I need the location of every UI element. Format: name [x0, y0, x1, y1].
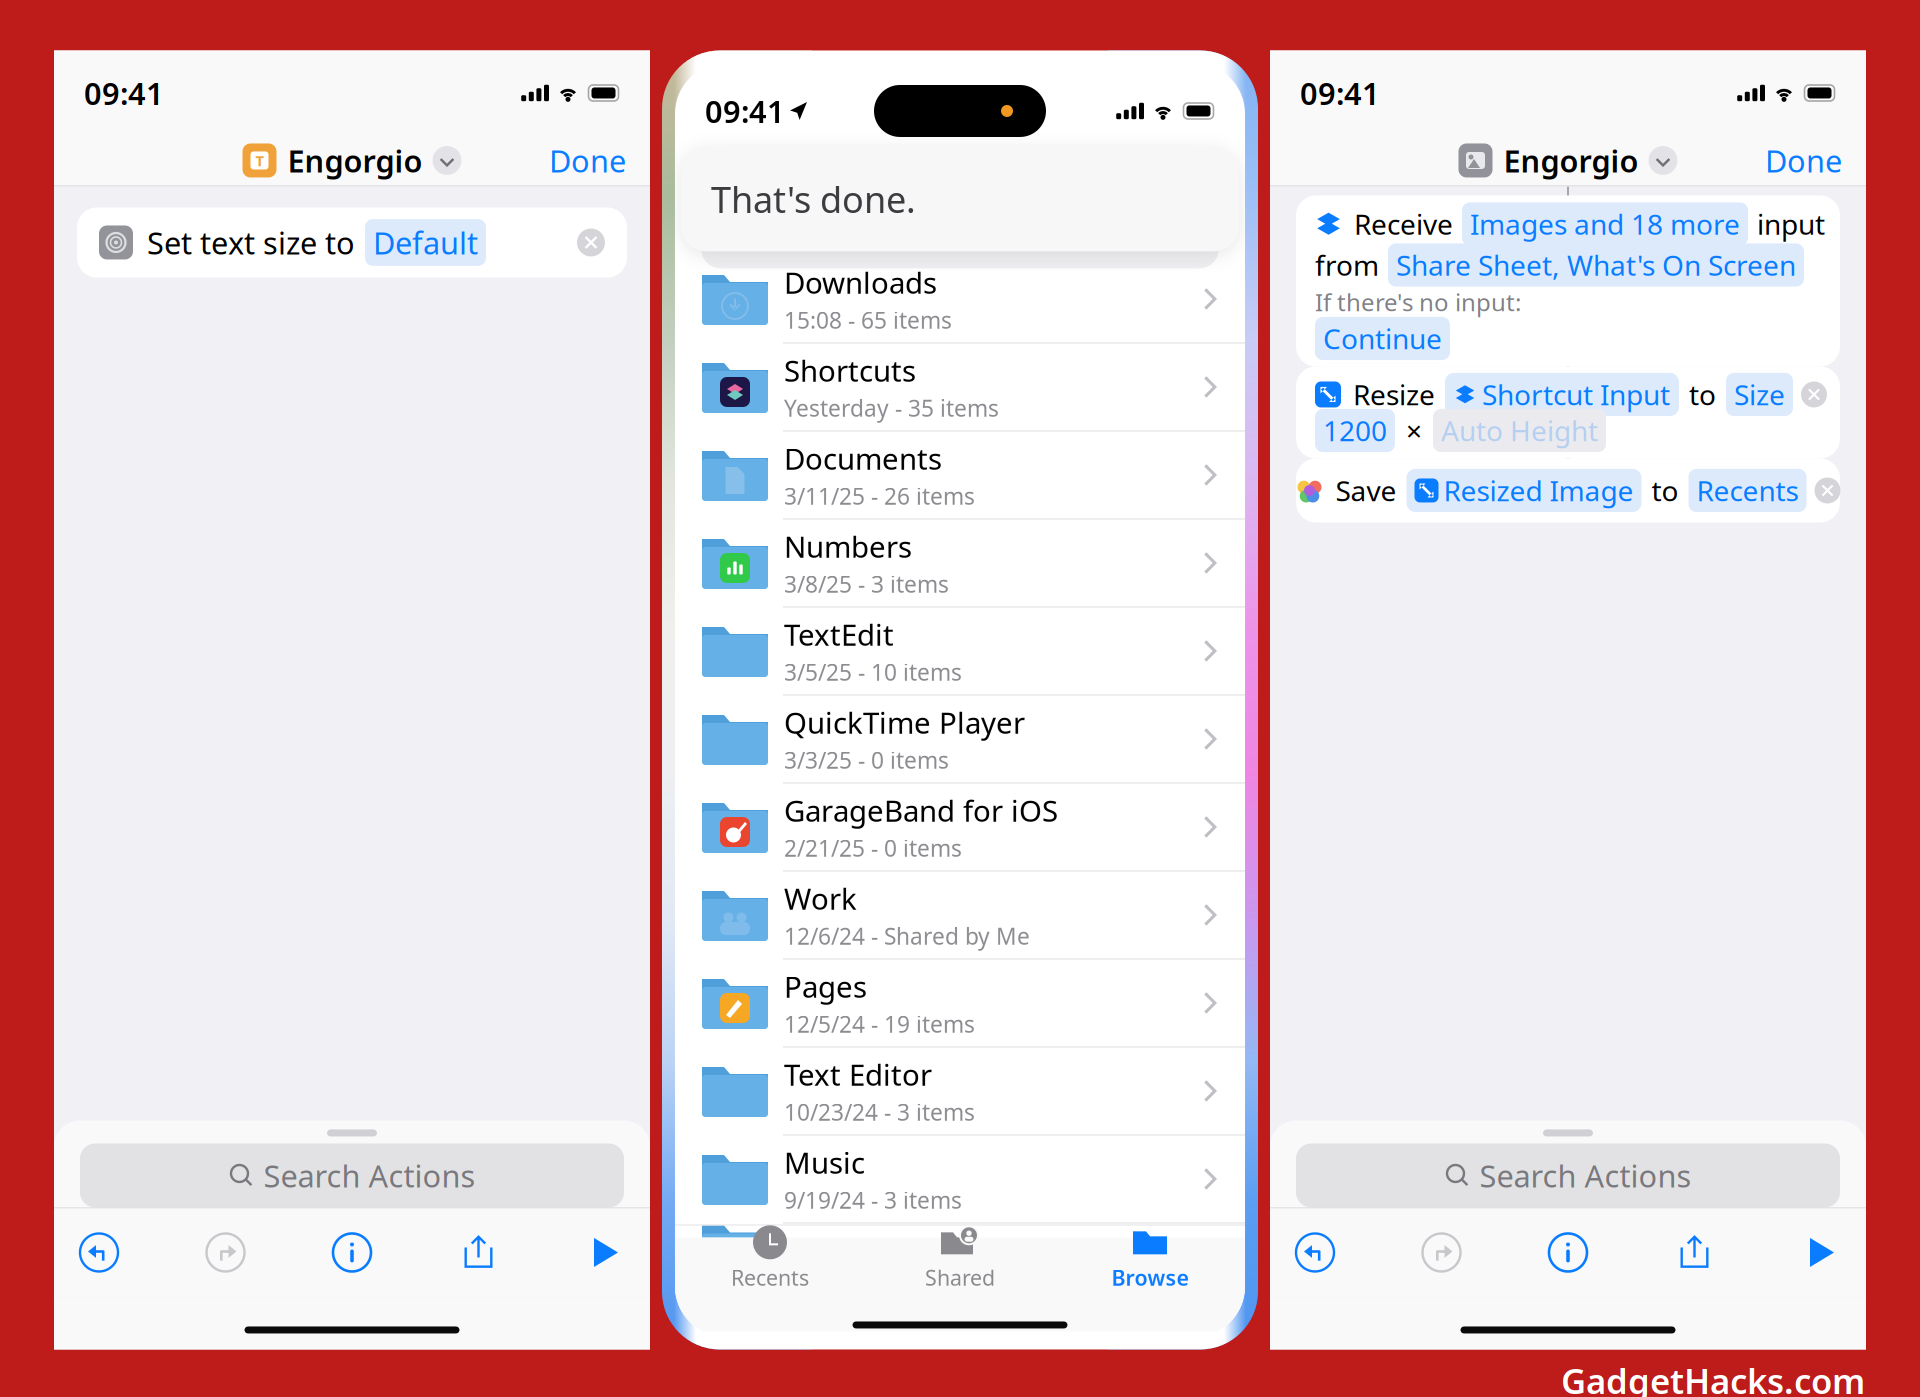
staticText: 09:41: [1300, 73, 1380, 113]
staticText: Images and 18 more: [1470, 205, 1740, 243]
staticText: Pages: [784, 967, 867, 1006]
staticText: 09:41: [84, 73, 164, 113]
button[interactable]: Undo: [1284, 1221, 1346, 1283]
staticText: 3/8/25 - 3 items: [784, 569, 949, 599]
button[interactable]: QuickTime Player: [675, 695, 1245, 782]
staticText: GarageBand for iOS: [784, 791, 1058, 830]
button[interactable]: Work: [675, 871, 1245, 958]
staticText: 2/21/25 - 0 items: [784, 833, 962, 863]
button[interactable]: T: [236, 135, 467, 185]
staticText: Downloads: [784, 263, 937, 302]
button[interactable]: Music: [675, 1135, 1245, 1222]
button[interactable]: Details: [321, 1221, 383, 1283]
button[interactable]: Shortcuts: [675, 343, 1245, 430]
staticText: Music: [784, 1143, 865, 1182]
button[interactable]: Redo: [1410, 1221, 1472, 1283]
staticText: Size: [1734, 376, 1785, 413]
staticText: Browse: [1111, 1263, 1188, 1292]
staticText: Set text size to: [147, 222, 355, 263]
staticText: Default: [373, 222, 478, 263]
staticText: Documents: [784, 439, 942, 478]
staticText: Done: [549, 140, 626, 181]
button[interactable]: Run shortcut: [574, 1221, 636, 1283]
staticText: input: [1757, 205, 1825, 243]
staticText: Search Actions: [1479, 1155, 1691, 1196]
button[interactable]: TextEdit: [675, 607, 1245, 694]
button[interactable]: Save: [1296, 458, 1840, 522]
staticText: Numbers: [784, 527, 912, 566]
staticText: 1200: [1323, 412, 1387, 449]
staticText: from: [1315, 246, 1379, 284]
staticText: Share Sheet, What's On Screen: [1396, 246, 1796, 284]
button[interactable]: GarageBand for iOS: [675, 783, 1245, 870]
button[interactable]: Set text size to: [54, 186, 650, 277]
staticText: GadgetHacks.com: [1561, 1357, 1865, 1397]
button[interactable]: Done: [525, 135, 650, 185]
staticText: Text Editor: [784, 1055, 932, 1094]
button[interactable]: Share: [447, 1221, 509, 1283]
staticText: Recents: [731, 1263, 809, 1292]
button[interactable]: Shared: [865, 1225, 1055, 1291]
staticText: Shared: [925, 1263, 995, 1292]
button[interactable]: Done: [1741, 135, 1866, 185]
button[interactable]: Run shortcut: [1790, 1221, 1852, 1283]
staticText: Save: [1335, 472, 1396, 509]
staticText: Work: [784, 879, 857, 918]
button[interactable]: Undo: [68, 1221, 130, 1283]
button[interactable]: Downloads: [675, 255, 1245, 342]
staticText: ×: [1406, 412, 1422, 449]
staticText: Recents: [1696, 472, 1798, 509]
button[interactable]: Engorgio: [1452, 135, 1683, 185]
staticText: Receive: [1354, 205, 1453, 243]
button[interactable]: Receive: [1296, 195, 1840, 366]
staticText: Shortcut Input: [1482, 376, 1670, 413]
staticText: 3/5/25 - 10 items: [784, 657, 962, 687]
button[interactable]: Resize: [1296, 366, 1840, 458]
button[interactable]: Recents: [675, 1225, 865, 1291]
staticText: 09:41: [705, 91, 785, 131]
staticText: If there's no input:: [1315, 286, 1521, 318]
staticText: Auto Height: [1441, 412, 1598, 449]
staticText: 3/3/25 - 0 items: [784, 745, 949, 775]
button[interactable]: Share: [1663, 1221, 1725, 1283]
staticText: Resize: [1353, 376, 1435, 413]
button[interactable]: Browse: [1055, 1225, 1245, 1291]
staticText: 3/11/25 - 26 items: [784, 481, 975, 511]
staticText: Engorgio: [287, 140, 422, 181]
staticText: Search Actions: [263, 1155, 475, 1196]
staticText: to: [1651, 472, 1678, 509]
staticText: Resized Image: [1443, 472, 1633, 509]
button[interactable]: Search Actions: [1270, 1136, 1866, 1207]
staticText: 9/19/24 - 3 items: [784, 1185, 962, 1215]
button[interactable]: Details: [1537, 1221, 1599, 1283]
staticText: TextEdit: [784, 615, 894, 654]
staticText: Engorgio: [1503, 140, 1638, 181]
staticText: QuickTime Player: [784, 703, 1025, 742]
staticText: That's done.: [711, 175, 916, 223]
staticText: Shortcuts: [784, 351, 916, 390]
staticText: 10/23/24 - 3 items: [784, 1097, 975, 1127]
staticText: T: [255, 151, 263, 170]
button[interactable]: Numbers: [675, 519, 1245, 606]
staticText: 12/6/24 - Shared by Me: [784, 921, 1030, 951]
staticText: 15:08 - 65 items: [784, 305, 952, 335]
button[interactable]: Documents: [675, 431, 1245, 518]
staticText: Continue: [1323, 320, 1442, 357]
staticText: to: [1689, 376, 1716, 413]
staticText: Done: [1765, 140, 1842, 181]
button[interactable]: Text Editor: [675, 1047, 1245, 1134]
button[interactable]: Redo: [194, 1221, 256, 1283]
button[interactable]: Search Actions: [54, 1136, 650, 1207]
button[interactable]: Pages: [675, 959, 1245, 1046]
staticText: Yesterday - 35 items: [784, 393, 999, 423]
staticText: 12/5/24 - 19 items: [784, 1009, 975, 1039]
